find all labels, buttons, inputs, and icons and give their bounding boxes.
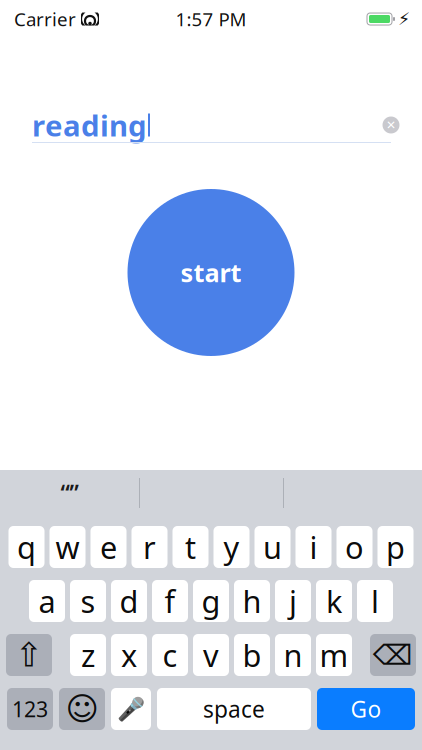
staticText: ⇧ — [15, 636, 43, 674]
button[interactable]: space — [157, 688, 311, 730]
button[interactable]: c — [152, 634, 188, 676]
button[interactable]: r — [131, 526, 167, 568]
staticText: q — [17, 527, 36, 567]
staticText: c — [162, 635, 177, 675]
staticText: v — [203, 635, 219, 675]
staticText: 1:57 PM — [175, 7, 246, 31]
staticText: x — [121, 635, 137, 675]
button[interactable]: Emoji — [59, 688, 105, 730]
button[interactable]: e — [90, 526, 126, 568]
staticText: n — [283, 635, 302, 675]
staticText: m — [319, 635, 348, 675]
staticText: w — [55, 527, 79, 567]
button[interactable]: start — [127, 189, 294, 356]
button[interactable]: Dictation — [111, 688, 151, 730]
staticText: u — [263, 527, 282, 567]
button[interactable]: v — [193, 634, 229, 676]
staticText: i — [309, 527, 317, 567]
staticText: r — [143, 527, 156, 567]
staticText: Carrier — [14, 7, 76, 31]
button[interactable]: k — [316, 580, 352, 622]
staticText: 123 — [12, 695, 48, 723]
button[interactable]: “” — [0, 470, 139, 516]
staticText: k — [326, 581, 342, 621]
button[interactable]: Shift — [6, 634, 52, 676]
staticText: o — [345, 527, 364, 567]
button[interactable]: u — [254, 526, 290, 568]
staticText: 🎤 — [117, 696, 145, 722]
button[interactable]: 123 — [7, 688, 53, 730]
staticText: space — [203, 694, 265, 724]
staticText: ☺ — [65, 691, 98, 727]
button[interactable]: o — [336, 526, 372, 568]
staticText: g — [201, 581, 220, 621]
staticText: “” — [60, 478, 78, 508]
button[interactable]: n — [275, 634, 311, 676]
staticText: s — [80, 581, 95, 621]
staticText: b — [242, 635, 261, 675]
button[interactable]: a — [29, 580, 65, 622]
staticText: j — [289, 581, 297, 621]
staticText: l — [371, 581, 379, 621]
button[interactable]: b — [234, 634, 270, 676]
button[interactable]: m — [316, 634, 352, 676]
staticText: f — [164, 581, 175, 621]
button[interactable]: h — [234, 580, 270, 622]
button[interactable]: Clear text — [375, 109, 407, 141]
staticText: a — [38, 581, 55, 621]
button[interactable]: Go — [317, 688, 415, 730]
button[interactable]: f — [152, 580, 188, 622]
button[interactable]: Delete — [370, 634, 416, 676]
button[interactable]: q — [8, 526, 44, 568]
button[interactable]: t — [172, 526, 208, 568]
button[interactable]: l — [357, 580, 393, 622]
staticText: ⚡︎ — [398, 9, 410, 29]
button[interactable]: w — [49, 526, 85, 568]
button[interactable]: g — [193, 580, 229, 622]
staticText: p — [386, 527, 405, 567]
button[interactable]: z — [70, 634, 106, 676]
staticText: start — [180, 256, 241, 289]
button[interactable]: d — [111, 580, 147, 622]
staticText: ⌫ — [373, 639, 413, 671]
staticText: Go — [350, 694, 381, 724]
button[interactable]: p — [377, 526, 413, 568]
button[interactable]: y — [213, 526, 249, 568]
staticText: d — [119, 581, 138, 621]
button[interactable]: i — [295, 526, 331, 568]
staticText: h — [242, 581, 261, 621]
staticText: reading — [32, 105, 147, 144]
button[interactable]: x — [111, 634, 147, 676]
staticText: ✕ — [386, 118, 396, 132]
button[interactable]: s — [70, 580, 106, 622]
button[interactable]: j — [275, 580, 311, 622]
staticText: e — [100, 527, 117, 567]
staticText: z — [81, 635, 95, 675]
staticText: t — [185, 527, 196, 567]
staticText: y — [223, 527, 239, 567]
